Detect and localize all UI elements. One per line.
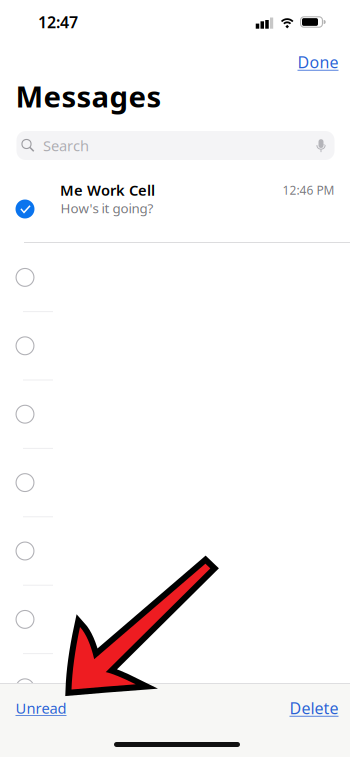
button[interactable]: Delete (283, 692, 344, 724)
staticText: Messages (15, 76, 161, 115)
staticText: Delete (289, 697, 338, 719)
staticText: How's it going? (60, 199, 153, 217)
staticText: Search (43, 136, 89, 155)
staticText: Done (297, 51, 338, 73)
staticText: 12:46 PM (282, 182, 334, 198)
staticText: 12:47 (38, 11, 78, 33)
button[interactable]: Me Work Cell (0, 176, 350, 234)
staticText: Unread (15, 698, 66, 718)
button[interactable]: Done (291, 47, 344, 77)
staticText: Me Work Cell (60, 180, 155, 200)
button[interactable]: Unread (9, 693, 72, 723)
